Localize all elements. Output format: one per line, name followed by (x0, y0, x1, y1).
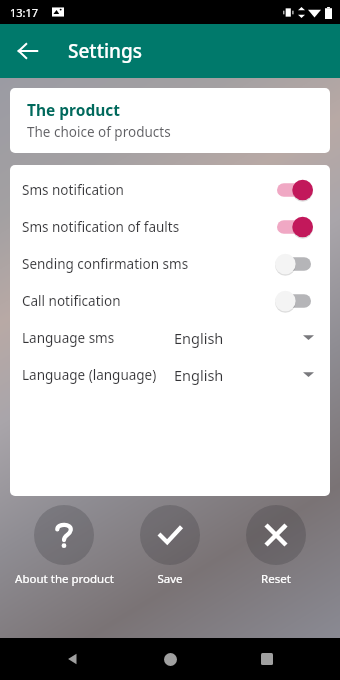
button[interactable]: Language (language) (10, 356, 330, 393)
staticText: Sending confirmation sms (22, 255, 274, 273)
staticText: Reset (261, 571, 291, 587)
button[interactable]: Save (118, 503, 222, 589)
button[interactable]: Back (8, 31, 48, 71)
staticText: The choice of products (27, 123, 171, 141)
button[interactable]: Language sms (10, 319, 330, 356)
staticText: Sms notification (22, 181, 274, 199)
staticText: Language (language) (22, 366, 174, 384)
staticText: 13:17 (10, 5, 39, 20)
button[interactable]: Sms notification (10, 171, 330, 208)
staticText: Call notification (22, 292, 274, 310)
button[interactable]: Sms notification of faults (10, 208, 330, 245)
staticText: Language sms (22, 329, 174, 347)
button[interactable]: Sending confirmation sms (10, 245, 330, 282)
button[interactable]: The product (10, 88, 330, 153)
button[interactable]: Back (49, 638, 97, 680)
button[interactable]: Call notification (10, 282, 330, 319)
staticText: About the product (15, 571, 114, 587)
staticText: English (174, 328, 303, 348)
staticText: The product (27, 99, 121, 120)
staticText: Sms notification of faults (22, 218, 274, 236)
staticText: Save (157, 571, 183, 587)
button[interactable]: Recents (243, 638, 291, 680)
button[interactable]: About the product (12, 503, 116, 589)
button[interactable]: Home (146, 638, 194, 680)
button[interactable]: Reset (224, 503, 328, 589)
staticText: English (174, 365, 303, 385)
staticText: Settings (68, 38, 142, 64)
